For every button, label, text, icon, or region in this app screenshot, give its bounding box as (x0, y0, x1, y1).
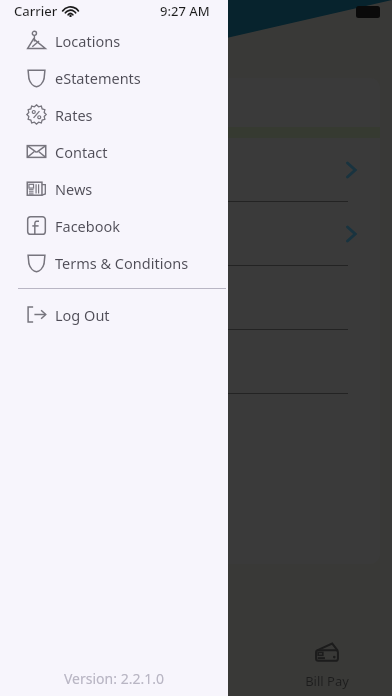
button[interactable]: Locations (0, 22, 228, 59)
button[interactable] (12, 202, 380, 266)
staticText: eStatements (55, 68, 141, 88)
button[interactable]: Bill Pay (261, 634, 392, 696)
staticText: Version: 2.2.1.0 (64, 669, 164, 688)
button[interactable] (12, 330, 380, 394)
staticText: Terms & Conditions (55, 253, 189, 273)
button[interactable] (12, 138, 380, 202)
staticText: Carrier (14, 2, 58, 20)
staticText: Contact (55, 142, 108, 162)
button[interactable]: Facebook (0, 207, 228, 244)
staticText: Rates (55, 105, 93, 125)
staticText: Locations (55, 31, 121, 51)
staticText: 9:27 AM (160, 2, 210, 20)
staticText: Scheduled (44, 94, 118, 114)
staticText: Bill Pay (305, 672, 349, 690)
staticText: Log Out (55, 305, 110, 325)
button[interactable]: Log Out (0, 296, 228, 333)
button[interactable]: eStatements (0, 59, 228, 96)
button[interactable]: Message (130, 634, 261, 696)
button[interactable] (12, 266, 380, 330)
button[interactable]: News (0, 170, 228, 207)
button[interactable]: Rates (0, 96, 228, 133)
staticText: Facebook (55, 216, 121, 236)
staticText: News (55, 179, 93, 199)
button[interactable]: Contact (0, 133, 228, 170)
button[interactable]: Terms & Conditions (0, 244, 228, 281)
